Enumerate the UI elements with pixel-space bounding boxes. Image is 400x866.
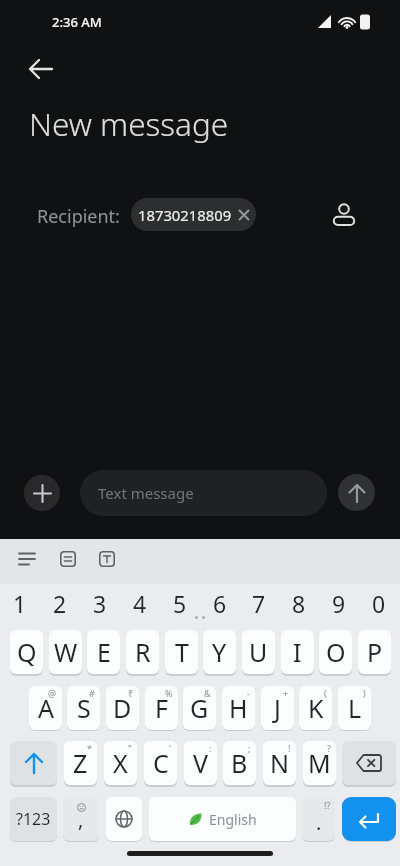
- button[interactable]: H: [222, 686, 255, 730]
- button[interactable]: R: [126, 630, 159, 674]
- button[interactable]: [28, 57, 54, 81]
- staticText: ?: [327, 742, 331, 754]
- button[interactable]: 18730218809: [131, 198, 256, 231]
- button[interactable]: 7: [239, 588, 279, 614]
- button[interactable]: [24, 475, 60, 511]
- staticText: V: [193, 746, 209, 780]
- button[interactable]: ?123: [10, 797, 57, 841]
- button[interactable]: 4: [120, 588, 160, 614]
- staticText: ?123: [16, 808, 51, 830]
- button[interactable]: F: [145, 686, 178, 730]
- staticText: R: [135, 635, 151, 669]
- button[interactable]: [99, 551, 115, 567]
- button[interactable]: N: [263, 741, 296, 785]
- staticText: New message: [29, 102, 229, 145]
- button[interactable]: 5: [160, 588, 200, 614]
- button[interactable]: L: [338, 686, 371, 730]
- staticText: D: [113, 691, 132, 725]
- button[interactable]: X: [104, 741, 137, 785]
- button[interactable]: English: [149, 797, 296, 841]
- staticText: J: [274, 691, 281, 725]
- button[interactable]: O: [319, 630, 352, 674]
- button[interactable]: 9: [319, 588, 359, 614]
- button[interactable]: B: [223, 741, 256, 785]
- button[interactable]: Text message: [80, 470, 327, 516]
- staticText: 6: [213, 588, 227, 614]
- button[interactable]: G: [183, 686, 216, 730]
- staticText: 1: [13, 588, 27, 614]
- button[interactable]: [332, 202, 356, 226]
- staticText: &: [204, 687, 211, 699]
- staticText: 7: [252, 588, 266, 614]
- staticText: 9: [332, 588, 346, 614]
- staticText: E: [97, 635, 111, 669]
- staticText: .: [316, 809, 322, 836]
- button[interactable]: M: [303, 741, 336, 785]
- staticText: 2: [53, 588, 67, 614]
- staticText: #: [89, 687, 95, 699]
- button[interactable]: [338, 474, 375, 511]
- staticText: N: [270, 746, 290, 780]
- staticText: A: [38, 691, 54, 725]
- button[interactable]: [19, 551, 36, 567]
- staticText: ,: [78, 806, 84, 833]
- staticText: T: [175, 635, 189, 669]
- staticText: *: [87, 742, 92, 754]
- staticText: O: [326, 635, 346, 669]
- button[interactable]: 6: [200, 588, 240, 614]
- staticText: B: [231, 746, 248, 780]
- staticText: 0: [372, 588, 386, 614]
- staticText: Text message: [98, 483, 194, 503]
- button[interactable]: A: [29, 686, 62, 730]
- staticText: (: [324, 687, 327, 699]
- button[interactable]: J: [261, 686, 294, 730]
- staticText: L: [348, 691, 362, 725]
- staticText: @: [48, 687, 57, 699]
- staticText: !?: [324, 799, 331, 811]
- button[interactable]: Z: [64, 741, 97, 785]
- button[interactable]: 0: [359, 588, 399, 614]
- button[interactable]: [342, 741, 396, 785]
- button[interactable]: V: [184, 741, 217, 785]
- button[interactable]: ,: [63, 797, 99, 841]
- button[interactable]: T: [165, 630, 198, 674]
- button[interactable]: D: [106, 686, 139, 730]
- staticText: -: [247, 687, 250, 699]
- button[interactable]: Y: [203, 630, 236, 674]
- staticText: Y: [212, 635, 227, 669]
- staticText: +: [283, 687, 289, 699]
- staticText: X: [113, 746, 128, 780]
- button[interactable]: 3: [80, 588, 120, 614]
- button[interactable]: [106, 797, 142, 841]
- staticText: M: [308, 746, 331, 780]
- button[interactable]: Q: [10, 630, 43, 674]
- staticText: ₹: [128, 687, 134, 699]
- button[interactable]: [10, 741, 57, 785]
- button[interactable]: P: [358, 630, 391, 674]
- staticText: ;: [248, 742, 251, 754]
- button[interactable]: S: [67, 686, 100, 730]
- staticText: 3: [93, 588, 107, 614]
- staticText: I: [293, 635, 302, 669]
- button[interactable]: U: [242, 630, 275, 674]
- staticText: ': [169, 742, 172, 754]
- button[interactable]: I: [281, 630, 314, 674]
- button[interactable]: K: [299, 686, 332, 730]
- button[interactable]: 1: [0, 588, 40, 614]
- button[interactable]: [60, 551, 76, 567]
- button[interactable]: W: [49, 630, 82, 674]
- staticText: H: [229, 691, 248, 725]
- button[interactable]: 2: [40, 588, 80, 614]
- staticText: 18730218809: [138, 205, 232, 225]
- staticText: English: [209, 810, 257, 829]
- staticText: F: [155, 691, 168, 725]
- button[interactable]: E: [87, 630, 120, 674]
- button[interactable]: [342, 797, 396, 841]
- button[interactable]: 8: [279, 588, 319, 614]
- button[interactable]: !?: [302, 797, 335, 841]
- staticText: 2:36 AM: [52, 13, 102, 31]
- button[interactable]: C: [144, 741, 177, 785]
- staticText: C: [153, 746, 169, 780]
- staticText: %: [165, 687, 173, 699]
- staticText: 5: [173, 588, 187, 614]
